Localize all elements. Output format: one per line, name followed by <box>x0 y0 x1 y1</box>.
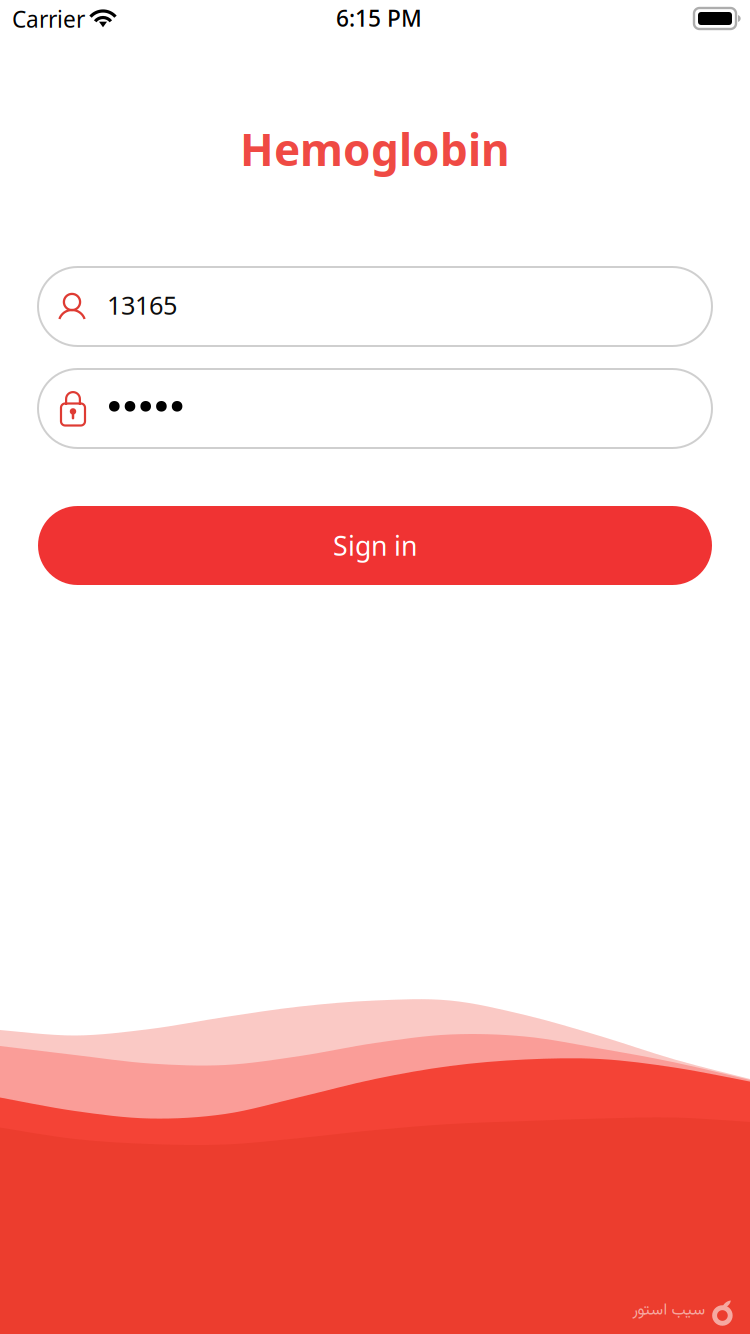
staticText: 13165 <box>107 288 177 322</box>
staticText: Hemoglobin <box>240 120 510 178</box>
button[interactable] <box>38 369 712 448</box>
staticText: Sign in <box>333 528 417 563</box>
button[interactable]: Sign in <box>38 506 712 585</box>
staticText: 6:15 PM <box>336 3 422 33</box>
staticText: Carrier <box>12 4 85 34</box>
staticText: سیب استور <box>632 1298 705 1323</box>
button[interactable]: 13165 <box>38 267 712 346</box>
